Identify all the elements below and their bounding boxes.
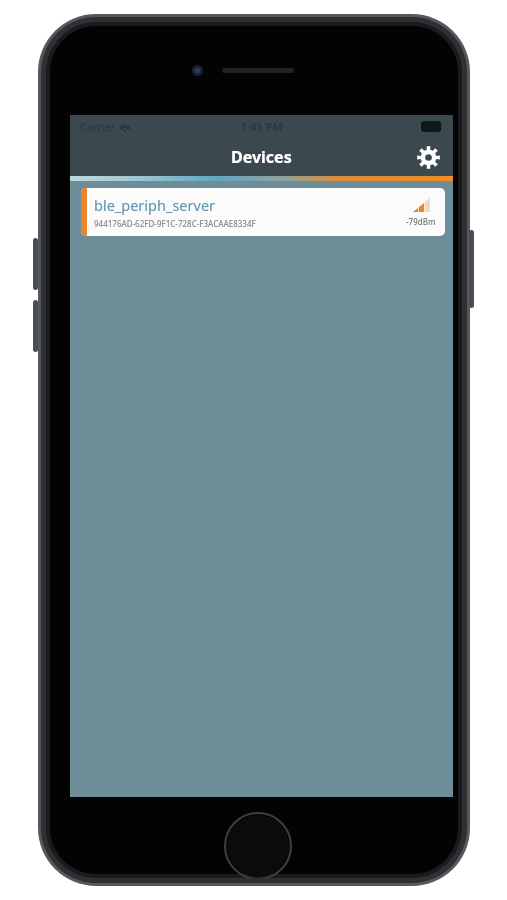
button[interactable]: Settings [413,142,443,172]
staticText: Carrier [80,120,115,134]
staticText: 944176AD-62FD-9F1C-728C-F3ACAAE8334F [94,218,256,229]
button[interactable]: ble_periph_server [81,188,445,236]
staticText: -79dBm [406,216,436,227]
staticText: 1:45 PM [241,119,283,134]
staticText: Devices [231,146,292,168]
staticText: ble_periph_server [94,195,216,215]
